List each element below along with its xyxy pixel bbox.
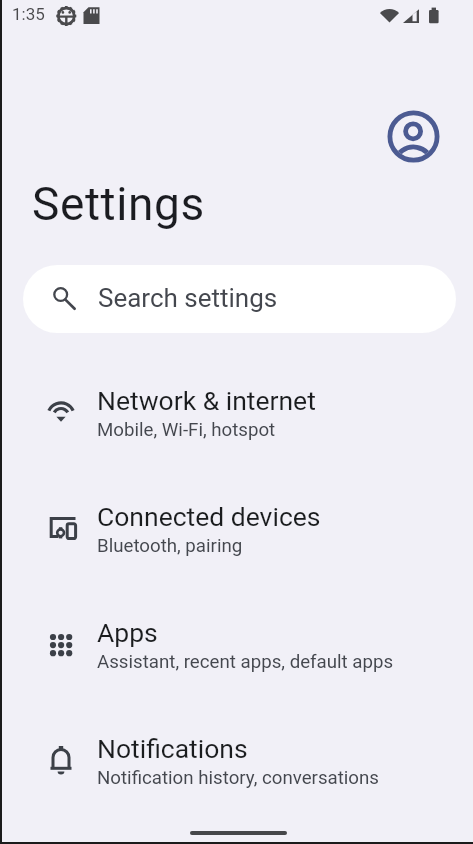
staticText: Network & internet	[97, 385, 316, 416]
button[interactable]: Notifications	[0, 703, 473, 819]
button[interactable]	[388, 111, 439, 162]
staticText: Bluetooth, pairing	[97, 535, 243, 557]
staticText: Mobile, Wi-Fi, hotspot	[97, 419, 276, 441]
button[interactable]: Search settings	[23, 265, 456, 333]
staticText: Assistant, recent apps, default apps	[97, 651, 394, 673]
staticText: Search settings	[98, 283, 278, 313]
button[interactable]: Apps	[0, 587, 473, 703]
button[interactable]: Network & internet	[0, 355, 473, 471]
staticText: 1:35	[12, 4, 45, 24]
staticText: Connected devices	[97, 501, 321, 532]
staticText: Apps	[97, 617, 158, 648]
staticText: Settings	[32, 177, 205, 231]
staticText: Notifications	[97, 733, 248, 764]
button[interactable]: Connected devices	[0, 471, 473, 587]
staticText: Notification history, conversations	[97, 767, 379, 789]
